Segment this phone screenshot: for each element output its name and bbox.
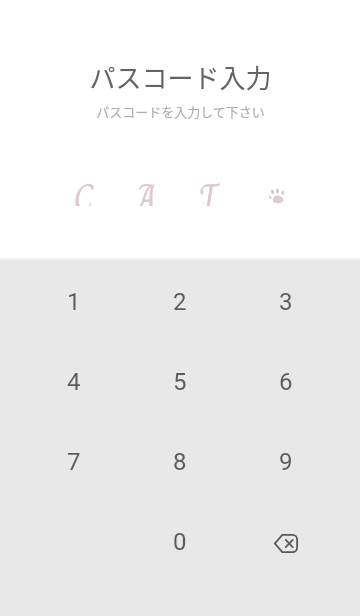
staticText: 5 [173,368,187,396]
staticText: 4 [67,368,81,396]
staticText: 3 [279,288,293,316]
staticText: T [198,170,220,206]
staticText: 1 [67,288,81,316]
button[interactable]: 9 [233,422,339,502]
staticText: パスコード入力 [89,58,272,96]
staticText: 6 [279,368,293,396]
button[interactable]: 5 [127,342,233,422]
button[interactable]: 6 [233,342,339,422]
button[interactable]: 0 [127,502,233,582]
button[interactable]: 7 [21,422,127,502]
button[interactable]: 3 [233,262,339,342]
staticText: 2 [173,288,187,316]
staticText: パスコードを入力して下さい [96,102,265,121]
button[interactable]: Delete [233,502,339,582]
staticText: 0 [173,528,187,556]
staticText: A [136,170,157,206]
button[interactable]: 8 [127,422,233,502]
button[interactable]: 2 [127,262,233,342]
button[interactable]: 4 [21,342,127,422]
button[interactable]: 1 [21,262,127,342]
staticText: 9 [279,448,293,476]
staticText: 7 [67,448,81,476]
staticText: C [73,170,94,206]
staticText: 8 [173,448,187,476]
